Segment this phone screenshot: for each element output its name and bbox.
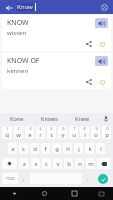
button[interactable]: Recents [59, 187, 89, 200]
staticText: , [23, 175, 25, 183]
button[interactable]: Kone [0, 113, 33, 124]
staticText: 7 [73, 126, 76, 131]
staticText: i [84, 131, 86, 139]
staticText: d [33, 145, 37, 153]
staticText: u [72, 131, 76, 139]
staticText: ?123 [6, 176, 15, 181]
button[interactable]: a [8, 143, 17, 154]
staticText: a [11, 145, 15, 153]
button[interactable]: KNOW OF [2, 53, 111, 89]
staticText: Kone [10, 115, 24, 122]
button[interactable]: 2 [14, 126, 23, 139]
button[interactable]: 1 [2, 126, 12, 139]
staticText: g [55, 145, 59, 153]
staticText: q [5, 131, 9, 139]
staticText: x [34, 160, 38, 168]
staticText: . [87, 175, 89, 183]
staticText: KNOW [7, 18, 29, 28]
button[interactable]: Voice input [99, 113, 113, 124]
button[interactable]: Shift [2, 158, 17, 169]
staticText: y [61, 131, 65, 139]
staticText: kennen [7, 67, 29, 75]
staticText: 0 [106, 126, 109, 131]
staticText: 5 [50, 126, 53, 131]
staticText: b [67, 160, 71, 168]
button[interactable]: x [31, 158, 40, 169]
staticText: m [88, 160, 94, 168]
staticText: 2 [17, 126, 20, 131]
button[interactable]: Hide keyboard [0, 187, 29, 200]
button[interactable]: 6 [58, 126, 67, 139]
button[interactable]: Search [98, 174, 108, 184]
button[interactable]: Switch keyboard [89, 187, 113, 200]
button[interactable]: j [74, 143, 83, 154]
staticText: 6 [62, 126, 65, 131]
staticText: l [100, 145, 102, 153]
button[interactable]: 7 [69, 126, 78, 139]
button[interactable]: 0 [102, 126, 111, 139]
button[interactable]: b [64, 158, 73, 169]
button[interactable]: h [63, 143, 72, 154]
button[interactable]: d [30, 143, 39, 154]
button[interactable]: m [86, 158, 95, 169]
button[interactable]: 5 [47, 126, 56, 139]
staticText: v [56, 160, 60, 168]
button[interactable]: f [41, 143, 50, 154]
button[interactable]: Comma [20, 173, 28, 184]
button[interactable]: g [52, 143, 61, 154]
staticText: j [78, 145, 80, 153]
button[interactable]: Play pronunciation [95, 56, 108, 66]
button[interactable]: Share [84, 39, 94, 49]
staticText: f [44, 145, 47, 153]
staticText: o [94, 131, 98, 139]
staticText: 9 [95, 126, 98, 131]
staticText: w [16, 131, 21, 139]
staticText: Knows [41, 115, 58, 122]
staticText: s [22, 145, 25, 153]
button[interactable]: Backspace [97, 158, 111, 169]
button[interactable]: Back [3, 2, 14, 13]
button[interactable]: 9 [91, 126, 100, 139]
button[interactable]: Knew [66, 113, 99, 124]
staticText: Know [17, 3, 33, 11]
button[interactable]: KNOW [2, 15, 111, 51]
staticText: r [39, 131, 42, 139]
button[interactable]: n [75, 158, 84, 169]
button[interactable]: 8 [80, 126, 89, 139]
button[interactable]: Share [84, 77, 94, 87]
button[interactable]: c [42, 158, 51, 169]
staticText: Knew [75, 115, 90, 122]
staticText: e [28, 131, 32, 139]
staticText: p [105, 131, 109, 139]
button[interactable]: ?123 [2, 173, 18, 184]
button[interactable]: s [19, 143, 28, 154]
button[interactable]: Clear search [98, 1, 110, 13]
button[interactable]: Home [29, 187, 59, 200]
button[interactable]: v [53, 158, 62, 169]
staticText: z [23, 160, 26, 168]
staticText: 1 [6, 126, 9, 131]
button[interactable]: Knows [33, 113, 66, 124]
button[interactable]: Favourite [97, 77, 107, 87]
staticText: c [45, 160, 48, 168]
staticText: k [88, 145, 92, 153]
button[interactable]: z [19, 158, 29, 169]
button[interactable]: 3 [25, 126, 34, 139]
button[interactable]: 4 [36, 126, 45, 139]
staticText: h [66, 145, 70, 153]
staticText: n [78, 160, 82, 168]
staticText: KNOW OF [7, 56, 40, 66]
staticText: 4 [39, 126, 42, 131]
staticText: wissen [7, 29, 27, 37]
staticText: t [50, 131, 53, 139]
button[interactable]: Play pronunciation [95, 18, 108, 28]
staticText: 8 [83, 126, 86, 131]
button[interactable]: Period [84, 173, 92, 184]
button[interactable]: Favourite [97, 39, 107, 49]
staticText: 3 [29, 126, 32, 131]
button[interactable]: l [96, 143, 105, 154]
button[interactable]: k [85, 143, 94, 154]
